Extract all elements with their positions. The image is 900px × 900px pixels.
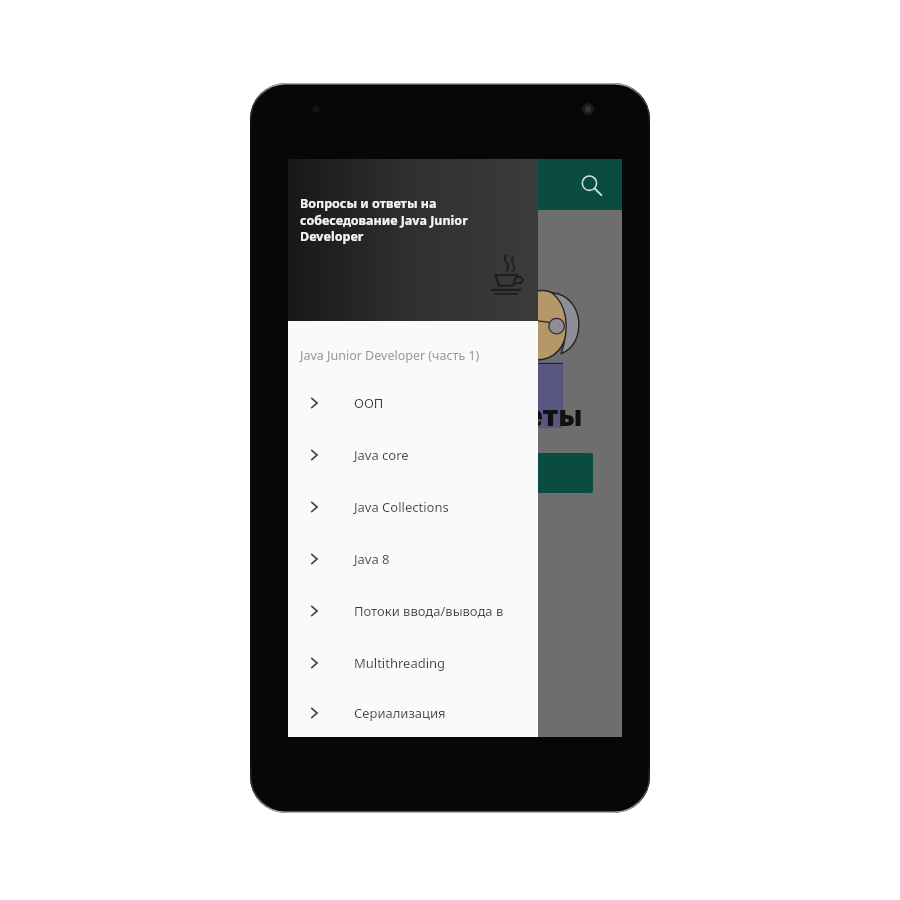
staticText: Java Collections: [354, 498, 449, 516]
staticText: Java Junior Developer (часть 1): [300, 347, 480, 364]
staticText: Java 8: [354, 550, 390, 568]
staticText: Вопросы и ответы на собеседование Java J…: [300, 195, 494, 244]
button[interactable]: Java 8: [288, 533, 538, 585]
button[interactable]: ООП: [288, 377, 538, 429]
staticText: ООП: [354, 394, 384, 412]
staticText: Сериализация: [354, 704, 446, 722]
staticText: Multithreading: [354, 654, 446, 672]
staticText: Java core: [354, 446, 409, 464]
button[interactable]: Сериализация: [288, 689, 538, 737]
button[interactable]: Multithreading: [288, 637, 538, 689]
button[interactable]: Потоки ввода/вывода в: [288, 585, 538, 637]
button[interactable]: Java core: [288, 429, 538, 481]
staticText: ответы: [476, 396, 583, 434]
button[interactable]: Java Collections: [288, 481, 538, 533]
button[interactable]: Search: [570, 164, 612, 206]
button[interactable]: [473, 453, 593, 493]
staticText: Потоки ввода/вывода в: [354, 602, 504, 620]
